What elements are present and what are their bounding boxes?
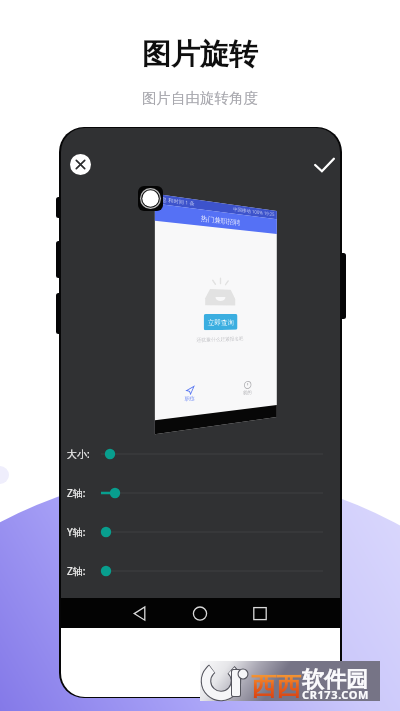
staticText: Y轴: [67,525,86,539]
button[interactable]: Z轴: [61,559,340,583]
button[interactable]: Y轴: [61,520,340,544]
staticText: Z轴: [67,564,86,578]
staticText: 中国移动 100% 19:25 [233,206,275,218]
staticText: 图片旋转 [142,36,258,73]
staticText: CR173.COM [302,687,370,702]
staticText: 还犹豫什么赶紧报名吧 [155,334,277,344]
button[interactable]: Close [70,154,91,175]
staticText: 热门兼职招聘 [201,214,240,227]
staticText: 职位 [185,394,195,402]
button[interactable]: Z轴: [61,481,340,505]
button[interactable]: 立即查询 [204,314,237,330]
staticText: 立即查询 [208,318,234,327]
staticText: 软件园 [302,666,368,694]
button[interactable]: 我的 [235,380,259,401]
staticText: 西西 [251,671,301,702]
button[interactable]: Confirm [311,152,337,178]
staticText: 大小: [67,447,90,461]
button[interactable]: Rotate handle [138,186,163,211]
staticText: Z轴: [67,486,86,500]
button[interactable]: 大小: [61,442,340,466]
staticText: 消息 和时间 1 条 [156,195,195,208]
staticText: 我的 [243,389,252,396]
staticText: 图片自由旋转角度 [142,89,258,107]
button[interactable]: 职位 [175,384,204,408]
